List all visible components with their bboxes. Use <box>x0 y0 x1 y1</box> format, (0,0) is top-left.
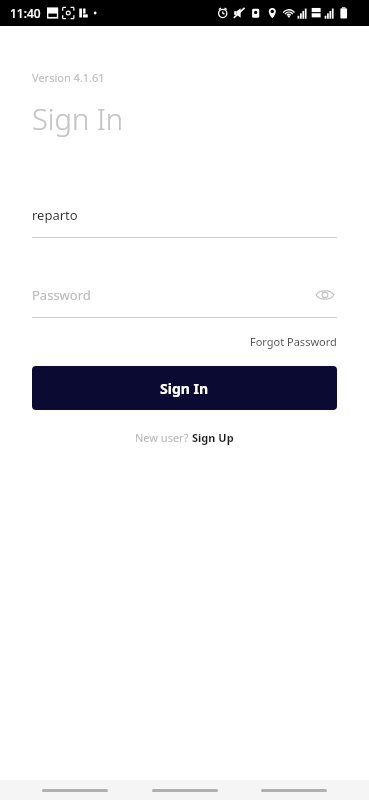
button[interactable]: System navigation <box>41 784 109 796</box>
button[interactable]: Password <box>32 282 337 308</box>
staticText: Sign In <box>160 379 209 398</box>
staticText: Sign In <box>32 99 124 138</box>
button[interactable]: System navigation <box>260 784 328 796</box>
button[interactable]: System navigation <box>151 784 219 796</box>
button[interactable]: Sign In <box>32 366 337 410</box>
button[interactable]: Show password <box>313 283 337 307</box>
button[interactable]: Sign Up <box>192 430 234 445</box>
staticText: Version 4.1.61 <box>32 70 105 85</box>
staticText: reparto <box>32 206 78 224</box>
staticText: 11:40 <box>10 5 41 21</box>
staticText: Password <box>32 286 313 304</box>
button[interactable]: Forgot Password <box>250 334 337 349</box>
button[interactable]: reparto <box>32 202 337 238</box>
staticText: New user? <box>135 430 192 445</box>
staticText: Forgot Password <box>250 334 337 349</box>
staticText: Sign Up <box>192 430 234 445</box>
